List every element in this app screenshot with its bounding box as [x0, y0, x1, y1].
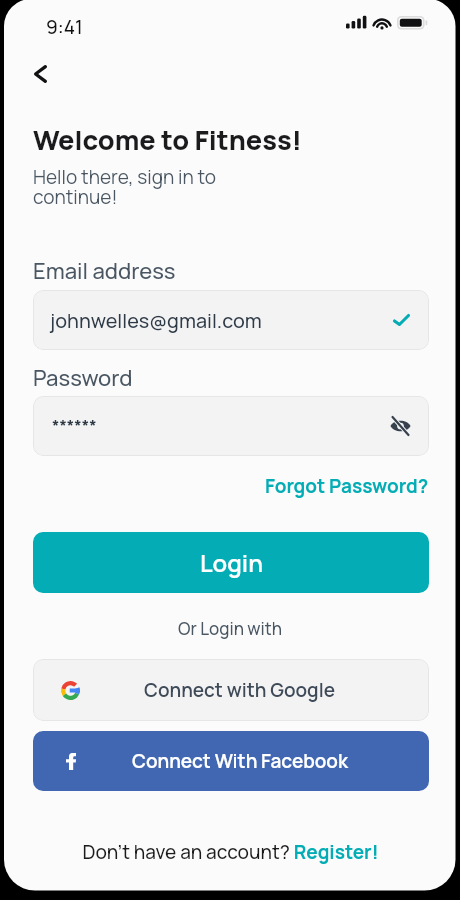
staticText: Forgot Password?	[265, 473, 429, 499]
staticText: Login	[200, 546, 263, 579]
button[interactable]: johnwelles@gmail.com	[33, 290, 429, 350]
staticText: Connect With Facebook	[132, 748, 348, 774]
button[interactable]: Back	[19, 53, 61, 95]
button[interactable]: Don’t have an account? Register!	[0, 836, 460, 868]
staticText: Hello there, sign in to continue!	[33, 164, 216, 210]
button[interactable]: ******	[33, 396, 429, 456]
staticText: 9:41	[46, 14, 83, 40]
button[interactable]: Show password	[385, 411, 415, 441]
staticText: Password	[33, 363, 133, 393]
staticText: Connect with Google	[144, 677, 336, 703]
button[interactable]: Connect with Google	[33, 659, 429, 721]
button[interactable]: Connect With Facebook	[33, 731, 429, 791]
other: Email valid	[387, 306, 415, 334]
staticText: johnwelles@gmail.com	[50, 307, 262, 334]
staticText: ******	[52, 415, 97, 437]
button[interactable]: Forgot Password?	[249, 470, 429, 502]
staticText: Email address	[33, 256, 176, 286]
button[interactable]: Login	[33, 532, 429, 593]
staticText: Or Login with	[178, 617, 283, 640]
staticText: Don’t have an account? Register!	[82, 839, 379, 865]
staticText: Welcome to Fitness!	[33, 121, 302, 158]
